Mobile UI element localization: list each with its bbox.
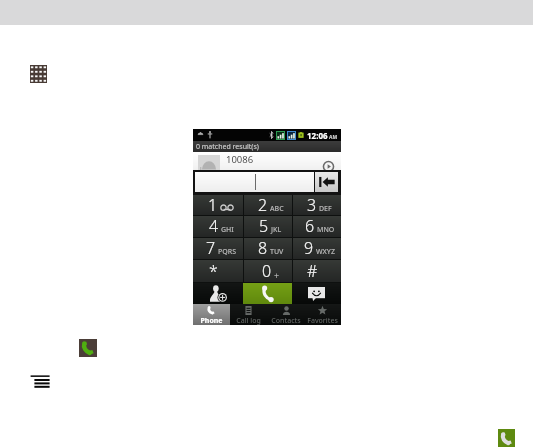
button[interactable]: 9 bbox=[292, 238, 341, 260]
staticText: DEF bbox=[319, 204, 332, 214]
staticText: GHI bbox=[221, 225, 234, 235]
button[interactable]: 8 bbox=[243, 238, 292, 260]
button[interactable]: Phone bbox=[193, 304, 230, 325]
button[interactable]: Message bbox=[292, 283, 341, 304]
button[interactable]: # bbox=[292, 260, 341, 283]
button[interactable]: Call log bbox=[230, 304, 267, 325]
staticText: Phone bbox=[200, 316, 223, 326]
staticText: 8 bbox=[258, 237, 268, 259]
button[interactable]: * bbox=[193, 260, 243, 283]
button[interactable]: 4 bbox=[193, 216, 243, 238]
button[interactable]: 10086 bbox=[193, 152, 341, 170]
staticText: MNO bbox=[317, 225, 335, 235]
staticText: Favorites bbox=[307, 316, 338, 326]
staticText: ABC bbox=[270, 204, 284, 214]
button[interactable]: 6 bbox=[292, 216, 341, 238]
button[interactable]: Call bbox=[243, 283, 292, 304]
button[interactable]: 7 bbox=[193, 238, 243, 260]
staticText: 0 matched result(s) bbox=[196, 142, 259, 152]
staticText: 10086 bbox=[226, 153, 254, 166]
staticText: + bbox=[274, 269, 280, 281]
staticText: Contacts bbox=[271, 316, 301, 326]
staticText: 3 bbox=[307, 194, 317, 215]
button[interactable]: Contacts bbox=[267, 304, 304, 325]
button[interactable]: Favorites bbox=[304, 304, 341, 325]
button[interactable]: Phone bbox=[79, 339, 97, 357]
staticText: * bbox=[209, 260, 218, 282]
staticText: 5 bbox=[259, 215, 269, 237]
staticText: # bbox=[307, 260, 318, 282]
button[interactable]: 2 bbox=[243, 195, 292, 216]
staticText: 6 bbox=[305, 215, 315, 237]
button[interactable]: Backspace bbox=[315, 172, 338, 192]
button[interactable] bbox=[195, 172, 314, 192]
staticText: 0 bbox=[262, 260, 272, 282]
staticText: AM bbox=[329, 134, 338, 141]
button[interactable]: Dial pad bbox=[30, 65, 47, 83]
button[interactable]: 5 bbox=[243, 216, 292, 238]
staticText: 2 bbox=[258, 194, 268, 215]
staticText: TUV bbox=[270, 247, 284, 257]
staticText: Call log bbox=[236, 316, 261, 326]
button[interactable]: Add contact bbox=[193, 283, 243, 304]
staticText: 9 bbox=[304, 237, 314, 259]
staticText: JKL bbox=[271, 225, 282, 235]
button[interactable]: 0 bbox=[243, 260, 292, 283]
staticText: PQRS bbox=[218, 247, 237, 257]
button[interactable]: 1 bbox=[193, 195, 243, 216]
button[interactable]: 3 bbox=[292, 195, 341, 216]
button[interactable]: Menu bbox=[30, 374, 50, 389]
staticText: 12:06 bbox=[307, 130, 328, 141]
button[interactable]: Call bbox=[498, 429, 515, 447]
staticText: 4 bbox=[209, 215, 219, 237]
staticText: WXYZ bbox=[316, 247, 335, 257]
staticText: 7 bbox=[206, 237, 216, 259]
staticText: 1 bbox=[208, 194, 218, 215]
